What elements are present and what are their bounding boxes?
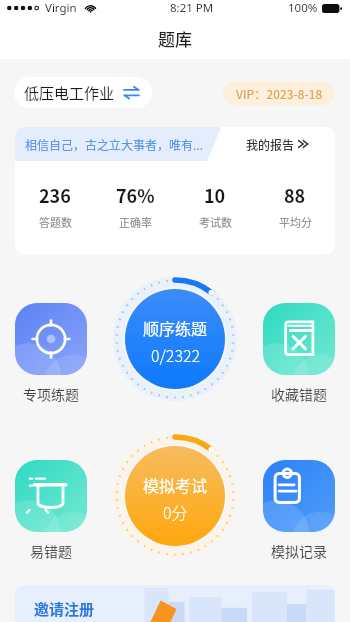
staticText: 易错题 — [6, 541, 96, 561]
staticText: 低压电工作业 — [24, 82, 115, 104]
staticText: 相信自己，古之立大事者，唯有... — [25, 136, 204, 153]
staticText: 76% — [116, 182, 155, 208]
button[interactable]: 低压电工作业 — [14, 77, 152, 108]
staticText: 236 — [39, 182, 71, 208]
staticText: 88 — [284, 182, 306, 208]
staticText: 8:21 PM — [170, 0, 214, 16]
staticText: 顺序练题 — [143, 316, 208, 339]
button[interactable]: 我的报告 — [236, 127, 335, 161]
button[interactable]: 专项练题 — [6, 303, 96, 404]
button[interactable]: 邀请注册 — [15, 585, 335, 622]
staticText: 我的报告 — [246, 136, 295, 153]
button[interactable]: 顺序练题 — [111, 275, 239, 403]
staticText: 考试数 — [199, 214, 232, 230]
staticText: 专项练题 — [6, 384, 96, 404]
staticText: 收藏错题 — [254, 384, 344, 404]
staticText: 0分 — [163, 500, 188, 523]
staticText: 答题数 — [39, 214, 72, 230]
button[interactable]: VIP：2023-8-18 — [223, 81, 335, 105]
staticText: 0/2322 — [151, 343, 201, 366]
staticText: Virgin — [45, 0, 77, 16]
staticText: 正确率 — [119, 214, 152, 230]
button[interactable]: 相信自己，古之立大事者，唯有... — [15, 127, 215, 161]
staticText: 模拟考试 — [143, 473, 208, 496]
staticText: 模拟记录 — [254, 541, 344, 561]
staticText: 平均分 — [279, 214, 312, 230]
button[interactable]: 收藏错题 — [254, 303, 344, 404]
staticText: 邀请注册 — [34, 598, 95, 620]
staticText: 10 — [204, 182, 226, 208]
staticText: 题库 — [158, 26, 192, 51]
button[interactable]: 易错题 — [6, 460, 96, 561]
button[interactable]: 模拟记录 — [254, 460, 344, 561]
button[interactable]: 模拟考试 — [111, 432, 239, 560]
staticText: VIP：2023-8-18 — [236, 85, 323, 102]
staticText: 100% — [288, 0, 318, 16]
